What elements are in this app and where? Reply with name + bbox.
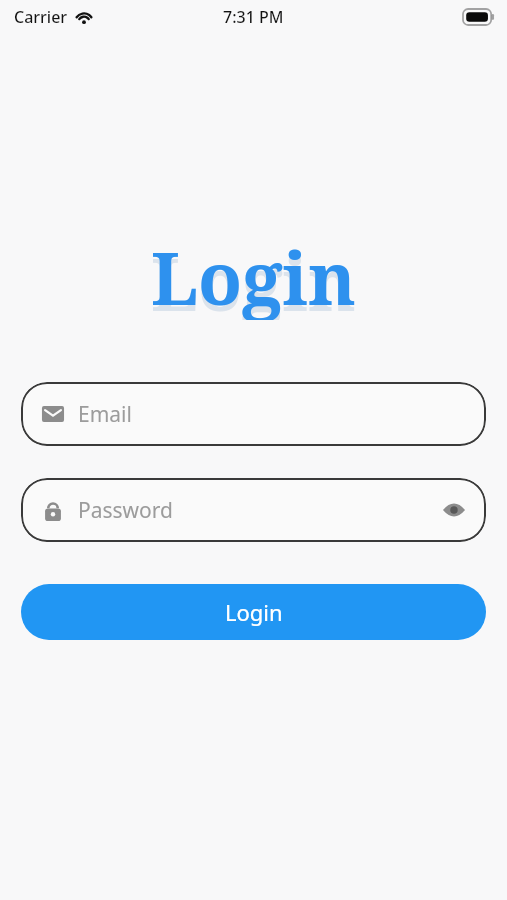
staticText: Password — [78, 496, 173, 525]
staticText: 7:31 PM — [223, 6, 284, 28]
staticText: Email — [78, 400, 132, 429]
staticText: Login — [151, 228, 356, 320]
staticText: Carrier — [14, 6, 68, 28]
staticText: Login — [225, 597, 283, 627]
button[interactable]: Email — [21, 382, 486, 446]
button[interactable]: Show password — [436, 492, 472, 528]
button[interactable]: Login — [21, 584, 486, 640]
staticText: Login — [151, 234, 356, 320]
button[interactable]: Password — [21, 478, 486, 542]
